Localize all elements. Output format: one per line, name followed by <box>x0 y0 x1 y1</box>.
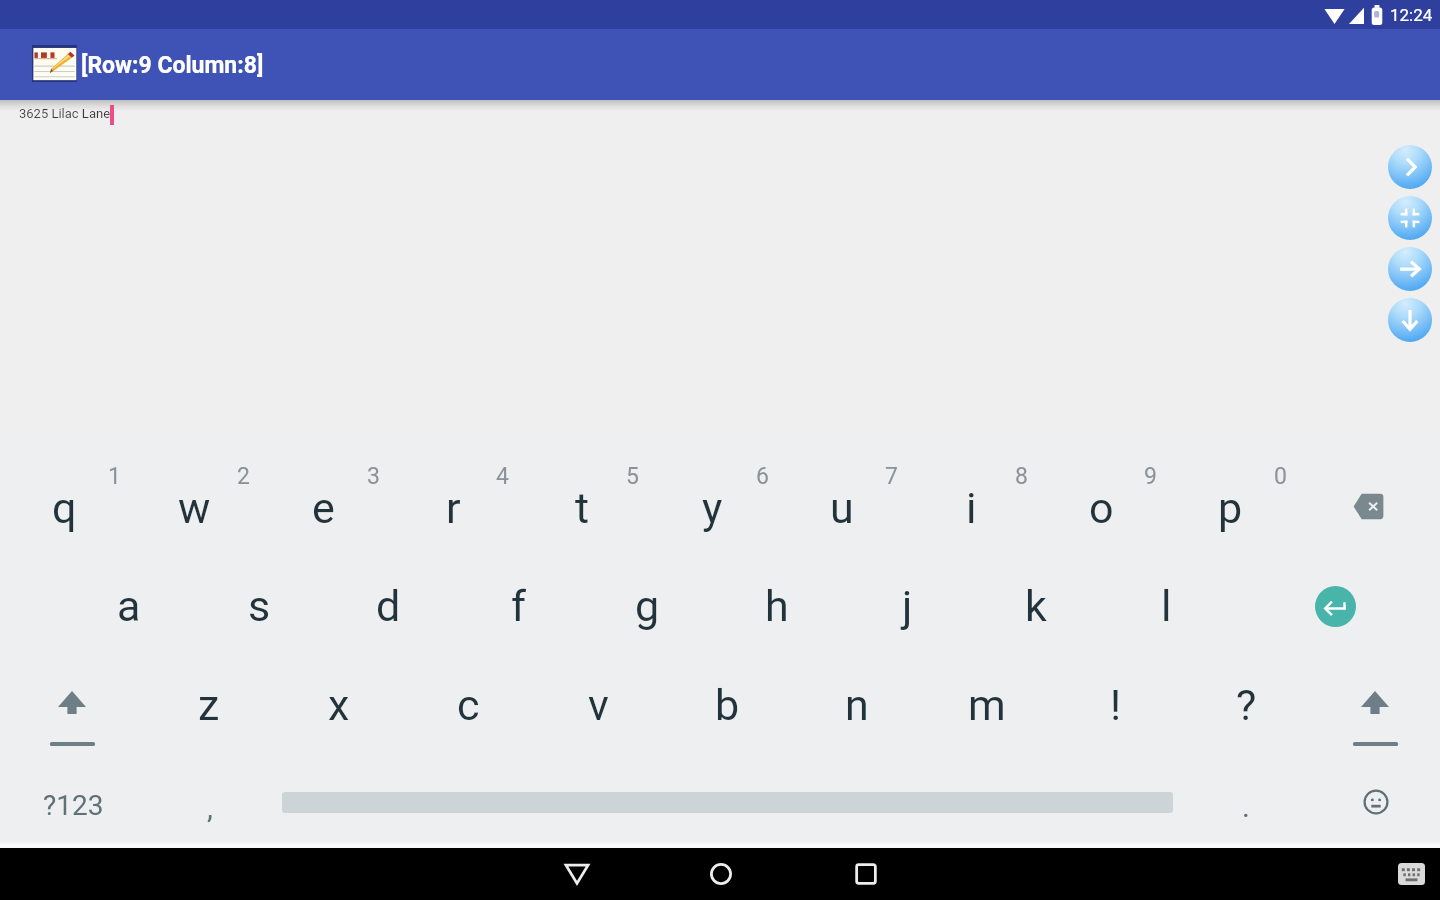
staticText: y <box>702 483 723 533</box>
button[interactable]: c <box>404 657 532 753</box>
staticText: . <box>1242 789 1250 824</box>
staticText: p <box>1218 483 1243 533</box>
button[interactable]: i <box>907 460 1035 556</box>
staticText: 8 <box>1015 463 1028 490</box>
staticText: 3625 Lilac Lane <box>19 106 111 121</box>
staticText: b <box>715 680 740 730</box>
button[interactable]: n <box>793 657 921 753</box>
button[interactable]: Enter <box>1280 558 1390 654</box>
button[interactable]: Backspace <box>1313 458 1423 554</box>
button[interactable]: k <box>972 558 1100 654</box>
staticText: o <box>1089 483 1114 533</box>
button[interactable]: Next <box>1388 145 1432 189</box>
staticText: i <box>966 483 977 533</box>
button[interactable]: Shift <box>18 686 128 752</box>
staticText: a <box>117 581 141 631</box>
button[interactable]: j <box>843 558 971 654</box>
staticText: q <box>52 483 77 533</box>
staticText: c <box>457 680 480 730</box>
staticText: 12:24 <box>1390 5 1433 25</box>
button[interactable]: t <box>518 460 646 556</box>
button[interactable]: Recent apps <box>842 848 890 900</box>
staticText: k <box>1025 581 1047 631</box>
button[interactable]: Move forward <box>1388 247 1432 291</box>
staticText: d <box>376 581 401 631</box>
button[interactable]: ?123 <box>9 761 137 849</box>
staticText: e <box>312 483 335 533</box>
staticText: s <box>248 581 271 631</box>
staticText: n <box>845 680 869 730</box>
button[interactable]: a <box>65 558 193 654</box>
button[interactable]: v <box>534 657 662 753</box>
staticText: 7 <box>885 463 898 490</box>
staticText: u <box>830 483 854 533</box>
staticText: t <box>575 483 590 533</box>
staticText: 3 <box>367 463 380 490</box>
staticText: g <box>635 581 660 631</box>
staticText: 0 <box>1274 463 1287 490</box>
button[interactable]: Emoji <box>1321 759 1431 845</box>
staticText: f <box>511 581 526 631</box>
staticText: m <box>968 680 1006 730</box>
staticText: 4 <box>496 463 509 490</box>
button[interactable]: e <box>259 460 387 556</box>
button[interactable]: o <box>1037 460 1165 556</box>
staticText: ! <box>1110 680 1122 730</box>
staticText: , <box>207 790 213 825</box>
button[interactable]: q <box>0 460 128 556</box>
button[interactable]: l <box>1102 558 1230 654</box>
button[interactable]: Shift <box>1321 686 1431 752</box>
staticText: h <box>765 581 789 631</box>
staticText: r <box>446 483 461 533</box>
button[interactable]: r <box>389 460 517 556</box>
button[interactable]: w <box>130 460 258 556</box>
staticText: 9 <box>1144 463 1157 490</box>
staticText: 5 <box>626 463 639 490</box>
button[interactable]: f <box>454 558 582 654</box>
button[interactable]: b <box>663 657 791 753</box>
button[interactable]: z <box>145 657 273 753</box>
button[interactable]: h <box>713 558 841 654</box>
staticText: l <box>1161 581 1172 631</box>
staticText: ?123 <box>43 789 104 822</box>
button[interactable]: ! <box>1052 657 1180 753</box>
staticText: [Row:9 Column:8] <box>81 52 264 79</box>
button[interactable]: Back <box>553 848 601 900</box>
button[interactable]: u <box>778 460 906 556</box>
staticText: w <box>178 483 211 533</box>
button[interactable]: Change keyboard <box>1391 854 1431 894</box>
staticText: x <box>328 680 350 730</box>
button[interactable]: g <box>583 558 711 654</box>
staticText: 6 <box>756 463 769 490</box>
button[interactable]: s <box>195 558 323 654</box>
button[interactable]: Collapse <box>1388 196 1432 240</box>
button[interactable]: Home <box>697 848 745 900</box>
button[interactable]: y <box>648 460 776 556</box>
staticText: 2 <box>237 463 250 490</box>
staticText: 1 <box>108 463 121 490</box>
button[interactable]: ? <box>1182 657 1310 753</box>
button[interactable]: d <box>324 558 452 654</box>
staticText: v <box>588 680 609 730</box>
button[interactable]: . <box>1182 762 1310 850</box>
staticText: ? <box>1236 680 1257 730</box>
button[interactable]: , <box>146 763 274 851</box>
staticText: j <box>902 581 913 631</box>
staticText: z <box>198 680 220 730</box>
button[interactable]: Move down <box>1388 298 1432 342</box>
button[interactable]: p <box>1166 460 1294 556</box>
button[interactable]: m <box>923 657 1051 753</box>
button[interactable]: x <box>275 657 403 753</box>
